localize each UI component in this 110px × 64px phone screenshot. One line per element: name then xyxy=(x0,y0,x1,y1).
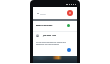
button[interactable]: Google account xyxy=(67,10,73,16)
button[interactable]: Send message xyxy=(67,48,71,52)
staticText: Ready to send text? xyxy=(36,24,53,26)
staticText: John Smith 12:06 xyxy=(43,34,56,36)
button[interactable]: Ready to send text? xyxy=(33,21,77,30)
staticText: Ready to send text? xyxy=(36,24,53,26)
button[interactable]: John Smith 12:06 xyxy=(33,31,77,59)
staticText: Search xyxy=(40,13,46,15)
staticText: Hi I am here now with my friends and wai… xyxy=(36,41,66,45)
staticText: Ready to send text? xyxy=(36,24,53,26)
button[interactable]: Messages xyxy=(67,24,70,27)
staticText: John Smith 12:06 xyxy=(43,34,56,36)
staticText: Hi I am here now with my friends and wai… xyxy=(36,41,66,45)
button[interactable]: Open navigation menu xyxy=(33,7,77,19)
staticText: Search xyxy=(40,13,46,15)
staticText: John Smith 12:06 xyxy=(43,34,56,36)
